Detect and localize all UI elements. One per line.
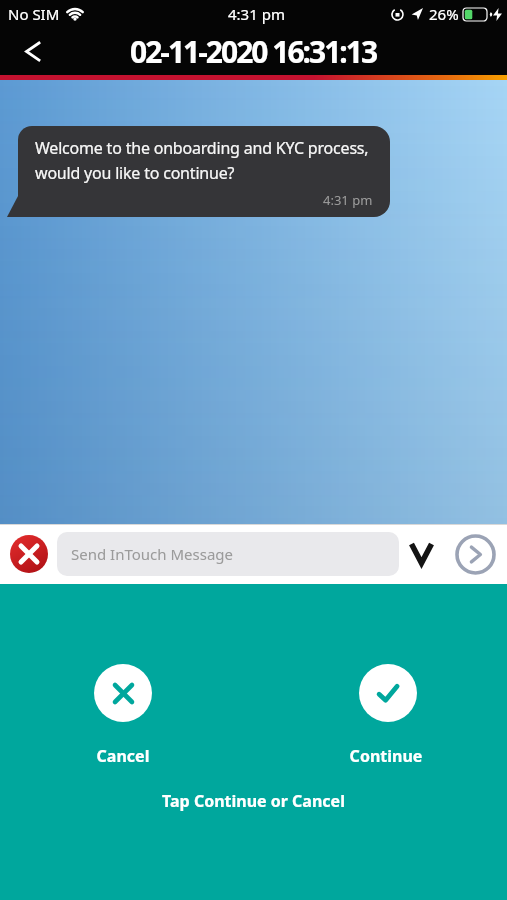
staticText: Welcome to the onboarding and KYC proces… (35, 137, 369, 183)
button[interactable] (455, 534, 496, 575)
staticText: No SIM (8, 4, 60, 24)
staticText: 26% (429, 4, 459, 24)
button[interactable] (25, 43, 39, 60)
button[interactable] (10, 535, 48, 573)
staticText: 4:31 pm (323, 191, 373, 209)
staticText: 4:31 pm (228, 4, 285, 24)
button[interactable] (359, 664, 417, 722)
staticText: 02-11-2020 16:31:13 (130, 31, 377, 72)
button[interactable] (409, 543, 434, 565)
staticText: Continue (265, 745, 507, 767)
staticText: Cancel (0, 745, 246, 767)
staticText: Send InTouch Message (71, 544, 233, 564)
staticText: Tap Continue or Cancel (0, 790, 507, 812)
button[interactable] (94, 664, 152, 722)
button[interactable]: Send InTouch Message (57, 532, 399, 576)
